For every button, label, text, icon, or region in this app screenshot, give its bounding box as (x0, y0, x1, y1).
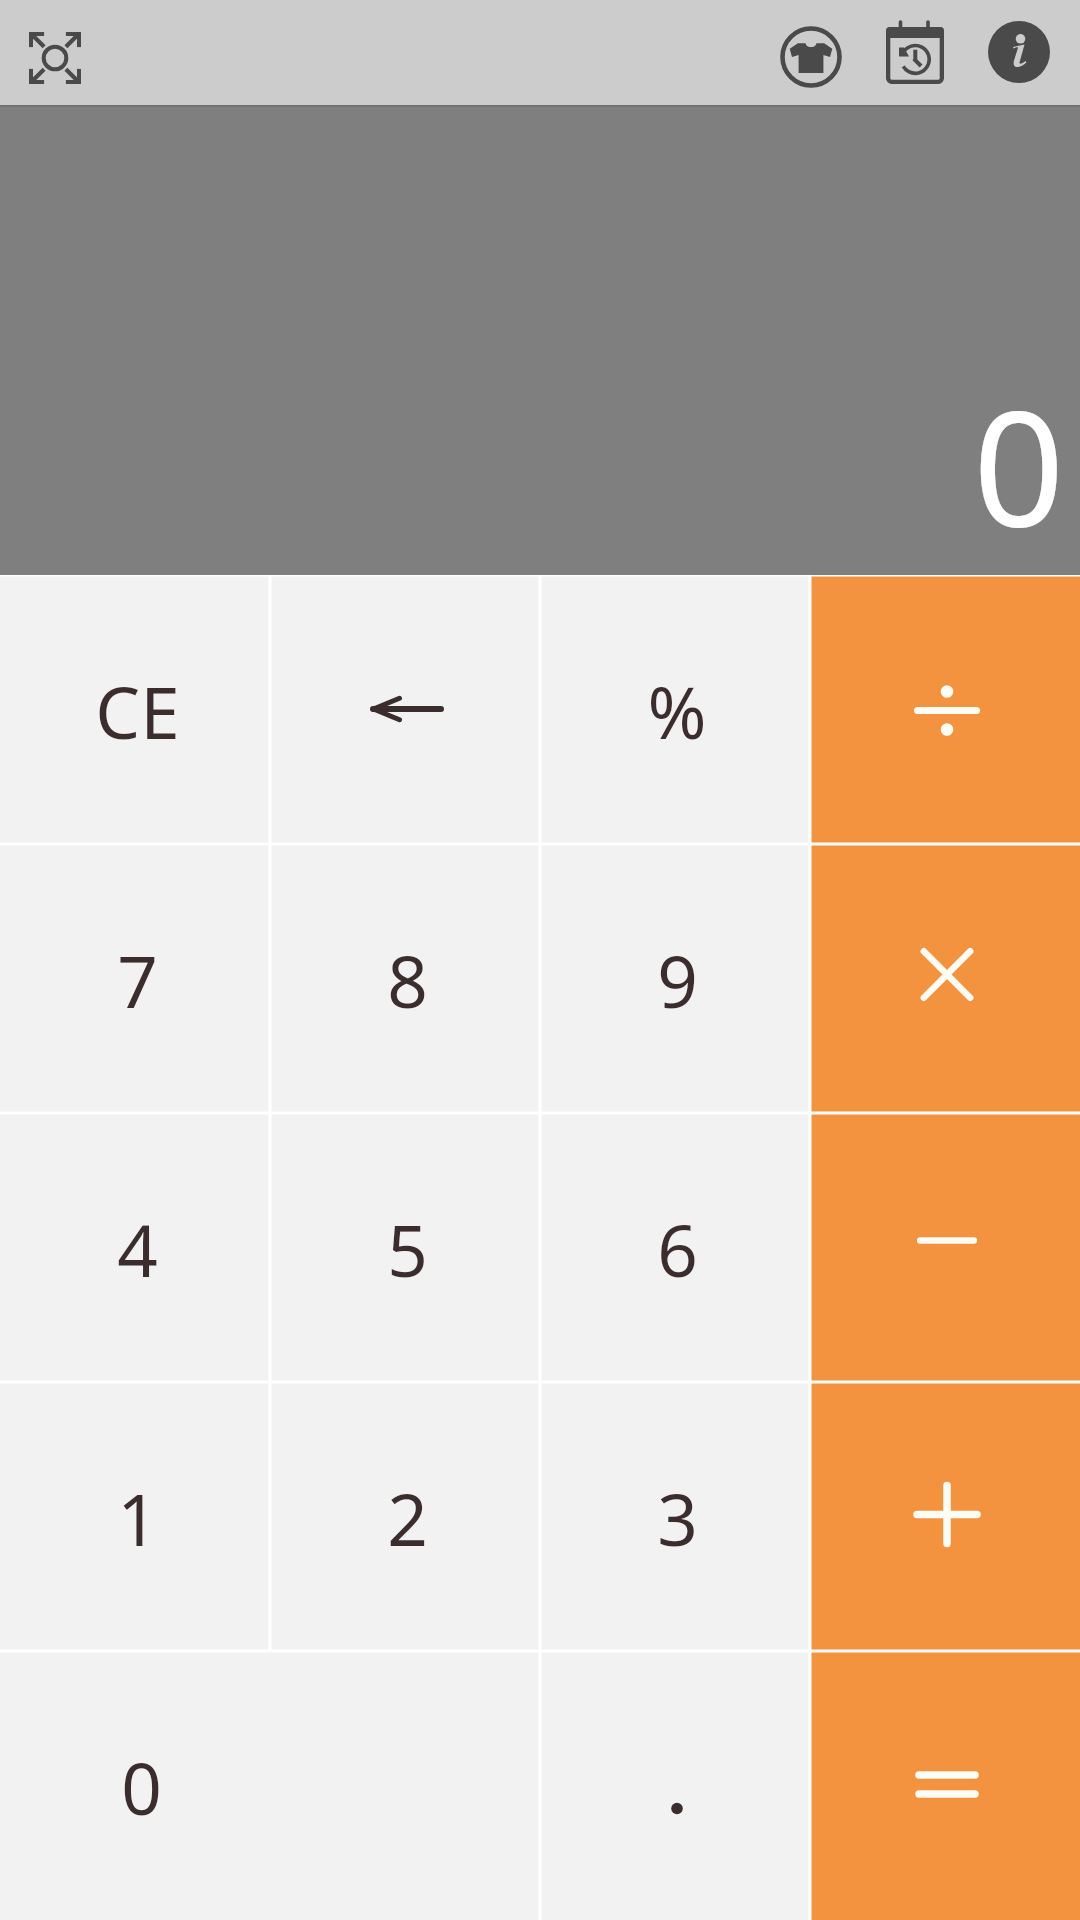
button[interactable]: 6 (540, 1113, 810, 1382)
staticText: 7 (117, 932, 158, 1029)
button[interactable]: 4 (0, 1113, 270, 1382)
button[interactable]: 2 (270, 1382, 540, 1651)
button[interactable]: Info (974, 0, 1064, 104)
staticText: 8 (387, 932, 428, 1029)
staticText: 0 (121, 1739, 162, 1836)
button[interactable]: History (870, 0, 960, 99)
staticText: 5 (387, 1201, 428, 1298)
staticText: % (647, 663, 707, 760)
button[interactable]: CE (0, 575, 270, 844)
button[interactable]: 1 (0, 1382, 270, 1651)
button[interactable]: 5 (270, 1113, 540, 1382)
button[interactable]: Divide (810, 575, 1080, 844)
staticText: 0 (973, 355, 1065, 573)
button[interactable]: Theme (766, 5, 856, 108)
staticText: 9 (657, 932, 698, 1029)
button[interactable]: Add (810, 1382, 1080, 1651)
staticText: 1 (117, 1470, 158, 1567)
button[interactable]: Equals (810, 1651, 1080, 1920)
staticText: 2 (387, 1470, 428, 1567)
button[interactable]: Subtract (810, 1113, 1080, 1382)
button[interactable]: % (540, 575, 810, 844)
button[interactable]: Decimal point (540, 1651, 810, 1920)
button[interactable]: Fit to screen (0, 5, 110, 110)
button[interactable]: 8 (270, 844, 540, 1113)
button[interactable]: 7 (0, 844, 270, 1113)
staticText: CE (95, 663, 180, 760)
button[interactable]: 9 (540, 844, 810, 1113)
button[interactable]: 0 (0, 1651, 270, 1920)
button[interactable]: Backspace (270, 575, 540, 844)
staticText: 4 (117, 1201, 158, 1298)
staticText: 3 (657, 1470, 698, 1567)
staticText: 6 (657, 1201, 698, 1298)
button[interactable]: Multiply (810, 844, 1080, 1113)
button[interactable]: 3 (540, 1382, 810, 1651)
